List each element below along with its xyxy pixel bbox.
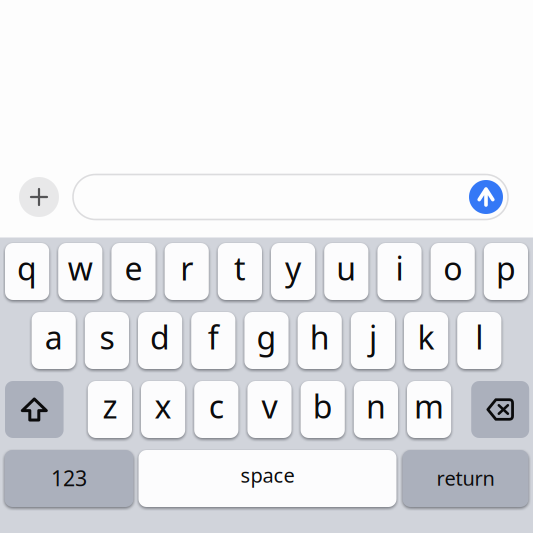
staticText: t — [234, 247, 246, 289]
button[interactable]: u — [324, 243, 368, 300]
button[interactable]: t — [218, 243, 262, 300]
staticText: d — [150, 316, 170, 358]
staticText: z — [102, 385, 117, 427]
staticText: h — [310, 316, 330, 358]
staticText: 123 — [51, 464, 87, 492]
button[interactable]: space — [138, 450, 396, 507]
button[interactable]: d — [138, 312, 182, 369]
button[interactable]: y — [271, 243, 315, 300]
staticText: r — [180, 247, 193, 289]
button[interactable]: 123 — [4, 450, 133, 507]
staticText: n — [366, 385, 386, 427]
button[interactable]: return — [402, 450, 528, 507]
staticText: return — [436, 465, 494, 491]
staticText: space — [240, 462, 294, 488]
staticText: l — [475, 316, 483, 358]
staticText: i — [395, 247, 403, 289]
button[interactable]: s — [85, 312, 129, 369]
staticText: s — [99, 316, 114, 358]
staticText: e — [124, 247, 142, 289]
button[interactable]: h — [298, 312, 342, 369]
staticText: k — [418, 316, 435, 358]
staticText: q — [17, 247, 37, 289]
button[interactable]: i — [377, 243, 422, 300]
button[interactable]: g — [244, 312, 289, 369]
button[interactable]: c — [194, 381, 238, 438]
button[interactable]: l — [457, 312, 501, 369]
button[interactable]: e — [111, 243, 156, 300]
staticText: o — [443, 247, 462, 289]
button[interactable]: m — [407, 381, 451, 438]
button[interactable]: Delete — [471, 381, 529, 438]
button[interactable]: j — [351, 312, 395, 369]
button[interactable]: x — [141, 381, 185, 438]
button[interactable]: Shift — [5, 381, 64, 438]
button[interactable]: k — [404, 312, 448, 369]
staticText: w — [68, 247, 93, 289]
button[interactable]: r — [165, 243, 209, 300]
staticText: u — [336, 247, 356, 289]
staticText: m — [414, 385, 444, 427]
staticText: x — [155, 385, 172, 427]
staticText: y — [285, 247, 301, 289]
button[interactable]: b — [301, 381, 345, 438]
staticText: p — [496, 247, 516, 289]
button[interactable]: v — [247, 381, 292, 438]
staticText: g — [256, 316, 276, 358]
button[interactable]: p — [484, 243, 528, 300]
staticText: v — [261, 385, 277, 427]
button[interactable]: Send — [469, 180, 503, 214]
button[interactable]: f — [191, 312, 235, 369]
staticText: c — [209, 385, 224, 427]
button[interactable]: o — [431, 243, 475, 300]
staticText: a — [45, 316, 63, 358]
button[interactable]: w — [58, 243, 102, 300]
staticText: b — [313, 385, 333, 427]
staticText: j — [369, 316, 377, 358]
button[interactable]: Add attachment — [19, 177, 59, 217]
button[interactable]: q — [5, 243, 49, 300]
staticText: f — [208, 316, 219, 358]
button[interactable]: n — [354, 381, 398, 438]
button[interactable]: z — [88, 381, 132, 438]
button[interactable]: a — [32, 312, 76, 369]
